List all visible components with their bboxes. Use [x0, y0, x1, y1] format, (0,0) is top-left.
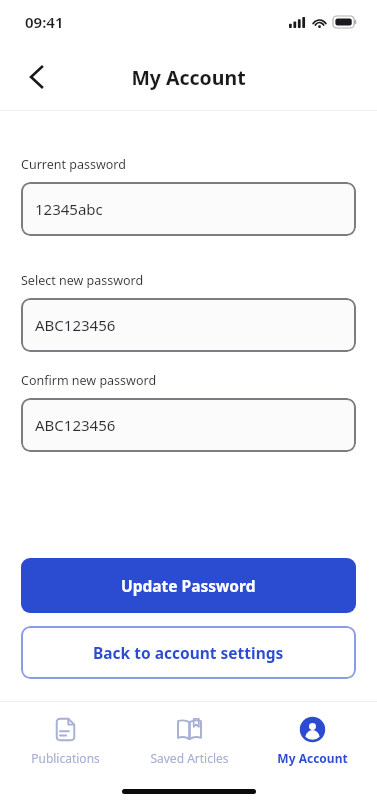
staticText: ABC123456 [35, 415, 116, 435]
staticText: Saved Articles [150, 750, 229, 766]
staticText: Update Password [121, 575, 256, 596]
staticText: ABC123456 [35, 315, 116, 335]
staticText: 12345abc [35, 199, 103, 219]
button[interactable]: My Account [253, 712, 371, 770]
button[interactable]: 12345abc [21, 182, 356, 236]
staticText: 09:41 [25, 12, 64, 32]
staticText: Current password [21, 156, 126, 173]
button[interactable]: ABC123456 [21, 398, 356, 452]
button[interactable]: Publications [6, 712, 124, 770]
staticText: Publications [31, 750, 100, 766]
staticText: Select new password [21, 272, 144, 289]
staticText: My Account [131, 64, 246, 91]
staticText: Back to account settings [93, 642, 284, 663]
button[interactable]: Back to account settings [21, 626, 356, 679]
button[interactable]: Update Password [21, 558, 356, 613]
button[interactable]: Saved Articles [130, 712, 248, 770]
staticText: My Account [277, 750, 348, 766]
staticText: Confirm new password [21, 372, 157, 389]
button[interactable]: Back [14, 55, 58, 99]
button[interactable]: ABC123456 [21, 298, 356, 352]
